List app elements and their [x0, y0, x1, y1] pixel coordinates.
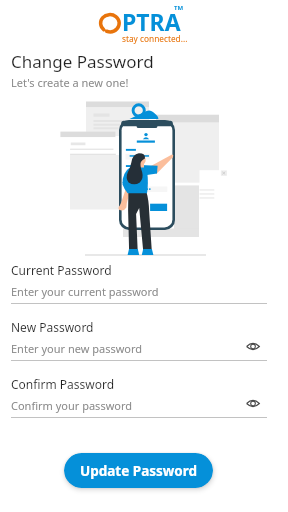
- staticText: Enter your current password: [11, 284, 159, 299]
- staticText: stay connected...: [122, 33, 188, 44]
- staticText: Update Password: [80, 462, 198, 480]
- staticText: New Password: [11, 319, 94, 335]
- button[interactable]: Update Password: [64, 453, 213, 488]
- staticText: Current Password: [11, 262, 112, 278]
- staticText: PTRA: [122, 6, 181, 37]
- button[interactable]: Show password: [243, 393, 263, 413]
- staticText: Confirm Password: [11, 376, 115, 392]
- button[interactable]: Show password: [243, 336, 263, 356]
- staticText: Change Password: [11, 50, 154, 73]
- staticText: TM: [174, 4, 184, 12]
- staticText: Enter your new password: [11, 341, 143, 356]
- staticText: Confirm your password: [11, 398, 133, 413]
- staticText: Let's create a new one!: [11, 75, 129, 90]
